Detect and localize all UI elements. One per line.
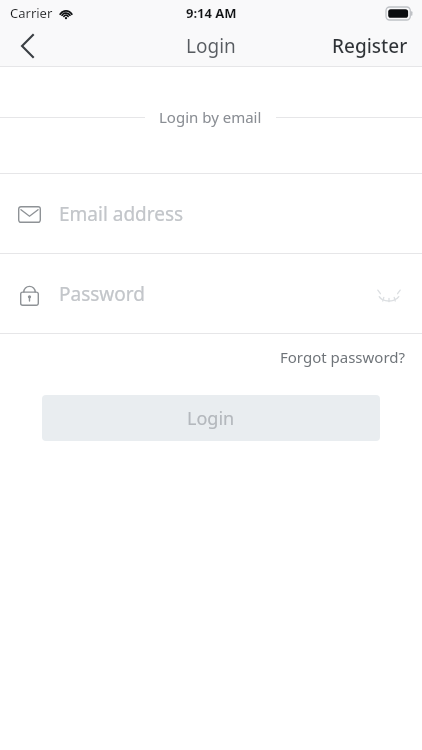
button[interactable]: Register xyxy=(318,26,422,66)
staticText: 9:14 AM xyxy=(186,4,237,22)
button[interactable]: Forgot password? xyxy=(264,339,422,375)
button[interactable]: Login xyxy=(42,395,380,441)
button[interactable]: Back xyxy=(0,26,54,66)
staticText: Login xyxy=(186,33,236,59)
button[interactable]: Email address xyxy=(0,174,422,253)
staticText: Login xyxy=(187,406,235,431)
staticText: Forgot password? xyxy=(280,347,406,367)
staticText: Carrier xyxy=(10,4,53,22)
staticText: Login by email xyxy=(159,107,262,127)
staticText: Email address xyxy=(59,201,184,227)
button[interactable]: Password xyxy=(0,254,422,333)
button[interactable]: Show password xyxy=(372,277,406,311)
staticText: Password xyxy=(59,281,145,307)
staticText: Register xyxy=(332,33,408,59)
